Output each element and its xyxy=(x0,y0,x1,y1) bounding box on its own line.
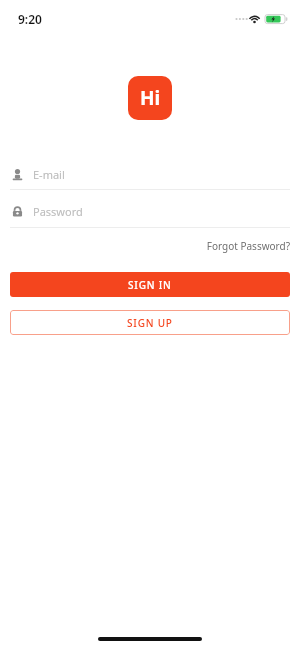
button[interactable]: E-mail xyxy=(0,158,300,190)
staticText: Forgot Password? xyxy=(206,239,290,253)
other: Password xyxy=(11,205,24,218)
staticText: Hi xyxy=(140,85,161,111)
staticText: SIGN UP xyxy=(127,316,173,330)
button[interactable]: Forgot Password? xyxy=(190,236,290,256)
staticText: Password xyxy=(33,204,83,219)
other: E-mail xyxy=(11,168,24,181)
button[interactable]: SIGN IN xyxy=(10,272,290,297)
staticText: SIGN IN xyxy=(128,278,172,292)
staticText: E-mail xyxy=(33,167,65,182)
staticText: 9:20 xyxy=(18,11,42,27)
button[interactable]: Password xyxy=(0,196,300,227)
button[interactable]: SIGN UP xyxy=(10,310,290,335)
